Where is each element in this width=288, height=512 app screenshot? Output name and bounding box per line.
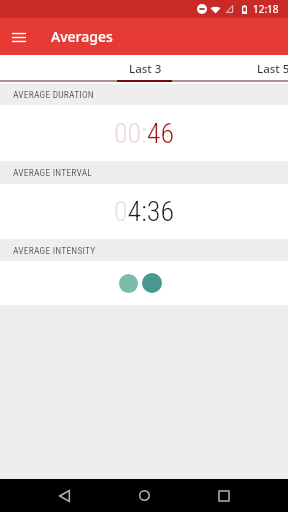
- staticText: AVERAGE DURATION: [13, 89, 94, 100]
- button[interactable]: Last 5: [209, 55, 288, 82]
- staticText: Averages: [51, 27, 113, 46]
- staticText: AVERAGE INTENSITY: [13, 245, 96, 256]
- button[interactable]: Open navigation drawer: [6, 24, 32, 50]
- staticText: 00:46: [114, 117, 175, 150]
- button[interactable]: Back: [44, 479, 84, 512]
- button[interactable]: Last 3: [81, 55, 209, 82]
- button[interactable]: Home: [124, 479, 164, 512]
- staticText: Last 5: [257, 61, 288, 77]
- staticText: 12:18: [253, 2, 279, 16]
- staticText: Last 3: [129, 61, 162, 77]
- staticText: 04:36: [114, 195, 175, 228]
- staticText: AVERAGE INTERVAL: [13, 167, 93, 178]
- button[interactable]: Recent apps: [204, 479, 244, 512]
